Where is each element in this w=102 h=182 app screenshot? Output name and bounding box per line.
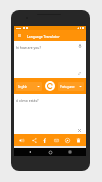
staticText: Language Translator — [27, 34, 60, 38]
button[interactable]: Delete — [74, 136, 82, 144]
staticText: English — [18, 85, 28, 89]
button[interactable]: Home — [46, 148, 54, 156]
button[interactable]: Speak — [17, 136, 25, 144]
button[interactable]: Voice input — [78, 44, 82, 48]
button[interactable]: Share by email — [52, 136, 60, 144]
button[interactable]: English — [16, 82, 42, 91]
button[interactable]: Swap languages — [45, 81, 55, 91]
staticText: hi how are you? — [16, 45, 41, 50]
button[interactable]: Back — [26, 148, 34, 156]
button[interactable]: Close — [78, 129, 81, 132]
button[interactable]: Menu — [14, 30, 86, 41]
button[interactable]: Recents — [66, 148, 74, 156]
button[interactable]: Share on WhatsApp — [63, 136, 71, 144]
button[interactable]: Portuguese — [58, 82, 84, 91]
staticText: Portuguese — [60, 85, 75, 89]
button[interactable]: Share — [30, 136, 38, 144]
button[interactable]: Share on Facebook — [40, 136, 48, 144]
staticText: ó cómo estás? — [16, 98, 39, 103]
